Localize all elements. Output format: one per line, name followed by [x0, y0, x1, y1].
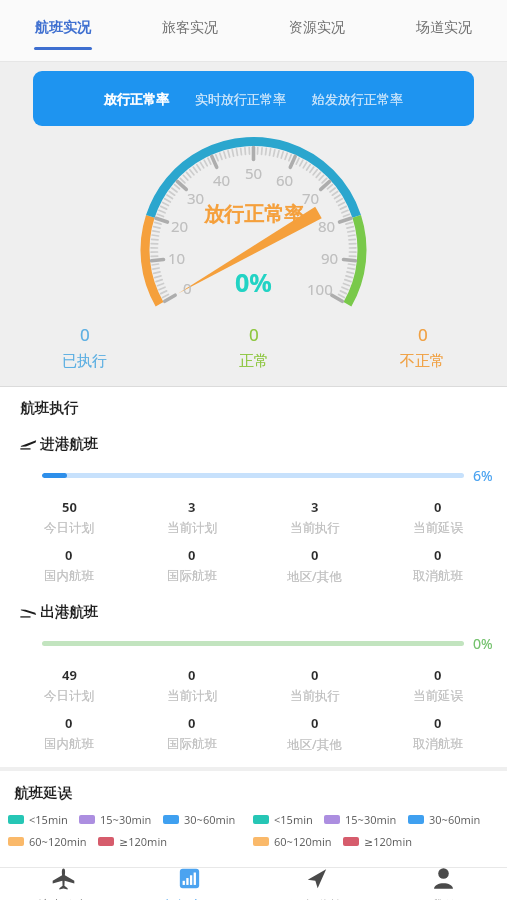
staticText: 50 — [62, 498, 77, 516]
staticText: 正常 — [239, 352, 269, 371]
button[interactable]: 航班实况 — [0, 0, 126, 61]
staticText: 取消航班 — [413, 568, 463, 584]
staticText: 0 — [434, 498, 442, 516]
staticText: 60 — [276, 170, 294, 190]
staticText: 15~30min — [100, 812, 152, 827]
staticText: 100 — [307, 279, 333, 299]
staticText: 0 — [311, 546, 319, 564]
staticText: 0 — [311, 666, 319, 684]
button[interactable]: 资源实况 — [253, 0, 380, 61]
button[interactable]: 0 — [130, 714, 253, 752]
button[interactable]: 机场实况 — [126, 867, 253, 900]
button[interactable]: 0 — [8, 546, 130, 584]
staticText: 今日计划 — [44, 688, 94, 704]
staticText: 资源实况 — [289, 19, 345, 37]
button[interactable]: 0 — [8, 714, 130, 752]
staticText: 30 — [187, 188, 205, 208]
staticText: 0 — [65, 546, 73, 564]
staticText: 进港航班 — [40, 435, 98, 453]
staticText: 地区/其他 — [287, 568, 342, 585]
button[interactable]: 3 — [253, 498, 376, 536]
staticText: 0 — [434, 714, 442, 732]
staticText: 0 — [434, 666, 442, 684]
button[interactable]: 0 — [130, 546, 253, 584]
staticText: 0 — [188, 546, 196, 564]
staticText: 始发放行正常率 — [312, 91, 403, 107]
button[interactable]: 0 — [253, 546, 376, 585]
staticText: 取消航班 — [413, 736, 463, 752]
staticText: 70 — [302, 188, 320, 208]
staticText: 已执行 — [62, 352, 107, 371]
button[interactable]: 我的 — [380, 867, 507, 900]
button[interactable]: 航班信息 — [0, 867, 126, 900]
button[interactable]: 放行正常率 — [91, 81, 182, 117]
staticText: 20 — [171, 216, 189, 236]
staticText: 90 — [321, 248, 339, 268]
staticText: 30~60min — [429, 812, 481, 827]
staticText: 旅客实况 — [162, 19, 218, 37]
button[interactable]: 飞行监控 — [253, 867, 380, 900]
button[interactable]: 49 — [8, 666, 130, 704]
staticText: 国际航班 — [167, 736, 217, 752]
button[interactable]: 实时放行正常率 — [182, 81, 299, 117]
button[interactable]: 0 — [253, 666, 376, 704]
staticText: 航班延误 — [14, 784, 72, 802]
staticText: 0 — [188, 714, 196, 732]
staticText: 3 — [311, 498, 319, 516]
staticText: 当前执行 — [290, 688, 340, 704]
staticText: ≥120min — [119, 834, 168, 849]
button[interactable]: 始发放行正常率 — [299, 81, 416, 117]
staticText: 10 — [168, 248, 186, 268]
staticText: 30~60min — [184, 812, 236, 827]
staticText: 6% — [473, 466, 493, 485]
button[interactable]: 0 — [0, 323, 169, 371]
button[interactable]: 场道实况 — [380, 0, 507, 61]
staticText: 出港航班 — [40, 603, 98, 621]
staticText: 飞行监控 — [291, 897, 343, 900]
button[interactable]: 0 — [376, 714, 499, 752]
staticText: 实时放行正常率 — [195, 91, 286, 107]
staticText: <15min — [29, 812, 68, 827]
staticText: 0% — [473, 634, 493, 653]
staticText: 50 — [245, 163, 263, 183]
staticText: 国内航班 — [44, 568, 94, 584]
button[interactable]: 0 — [169, 323, 338, 371]
staticText: 0 — [434, 546, 442, 564]
staticText: 0 — [249, 323, 259, 346]
staticText: 国际航班 — [167, 568, 217, 584]
staticText: 15~30min — [345, 812, 397, 827]
staticText: 当前执行 — [290, 520, 340, 536]
button[interactable]: 0 — [376, 546, 499, 584]
staticText: 航班信息 — [37, 897, 89, 900]
button[interactable]: 0 — [376, 666, 499, 704]
button[interactable]: 0 — [130, 666, 253, 704]
staticText: 放行正常率 — [204, 202, 304, 227]
button[interactable]: 50 — [8, 498, 130, 536]
button[interactable]: 旅客实况 — [126, 0, 253, 61]
button[interactable]: 0 — [253, 714, 376, 753]
button[interactable]: 0 — [376, 498, 499, 536]
staticText: 航班实况 — [35, 19, 91, 37]
staticText: 3 — [188, 498, 196, 516]
staticText: 不正常 — [400, 352, 445, 371]
staticText: 国内航班 — [44, 736, 94, 752]
staticText: 机场实况 — [164, 897, 216, 900]
staticText: 0 — [80, 323, 90, 346]
button[interactable]: 0 — [338, 323, 507, 371]
staticText: 0 — [188, 666, 196, 684]
staticText: 当前计划 — [167, 520, 217, 536]
button[interactable]: 3 — [130, 498, 253, 536]
staticText: 0 — [311, 714, 319, 732]
staticText: ≥120min — [364, 834, 413, 849]
staticText: 当前计划 — [167, 688, 217, 704]
staticText: 0 — [183, 278, 192, 298]
staticText: <15min — [274, 812, 313, 827]
staticText: 今日计划 — [44, 520, 94, 536]
staticText: 80 — [318, 216, 336, 236]
staticText: 地区/其他 — [287, 736, 342, 753]
staticText: 放行正常率 — [104, 91, 169, 107]
staticText: 0 — [418, 323, 428, 346]
staticText: 当前延误 — [413, 520, 463, 536]
staticText: 场道实况 — [416, 19, 472, 37]
staticText: 49 — [62, 666, 77, 684]
